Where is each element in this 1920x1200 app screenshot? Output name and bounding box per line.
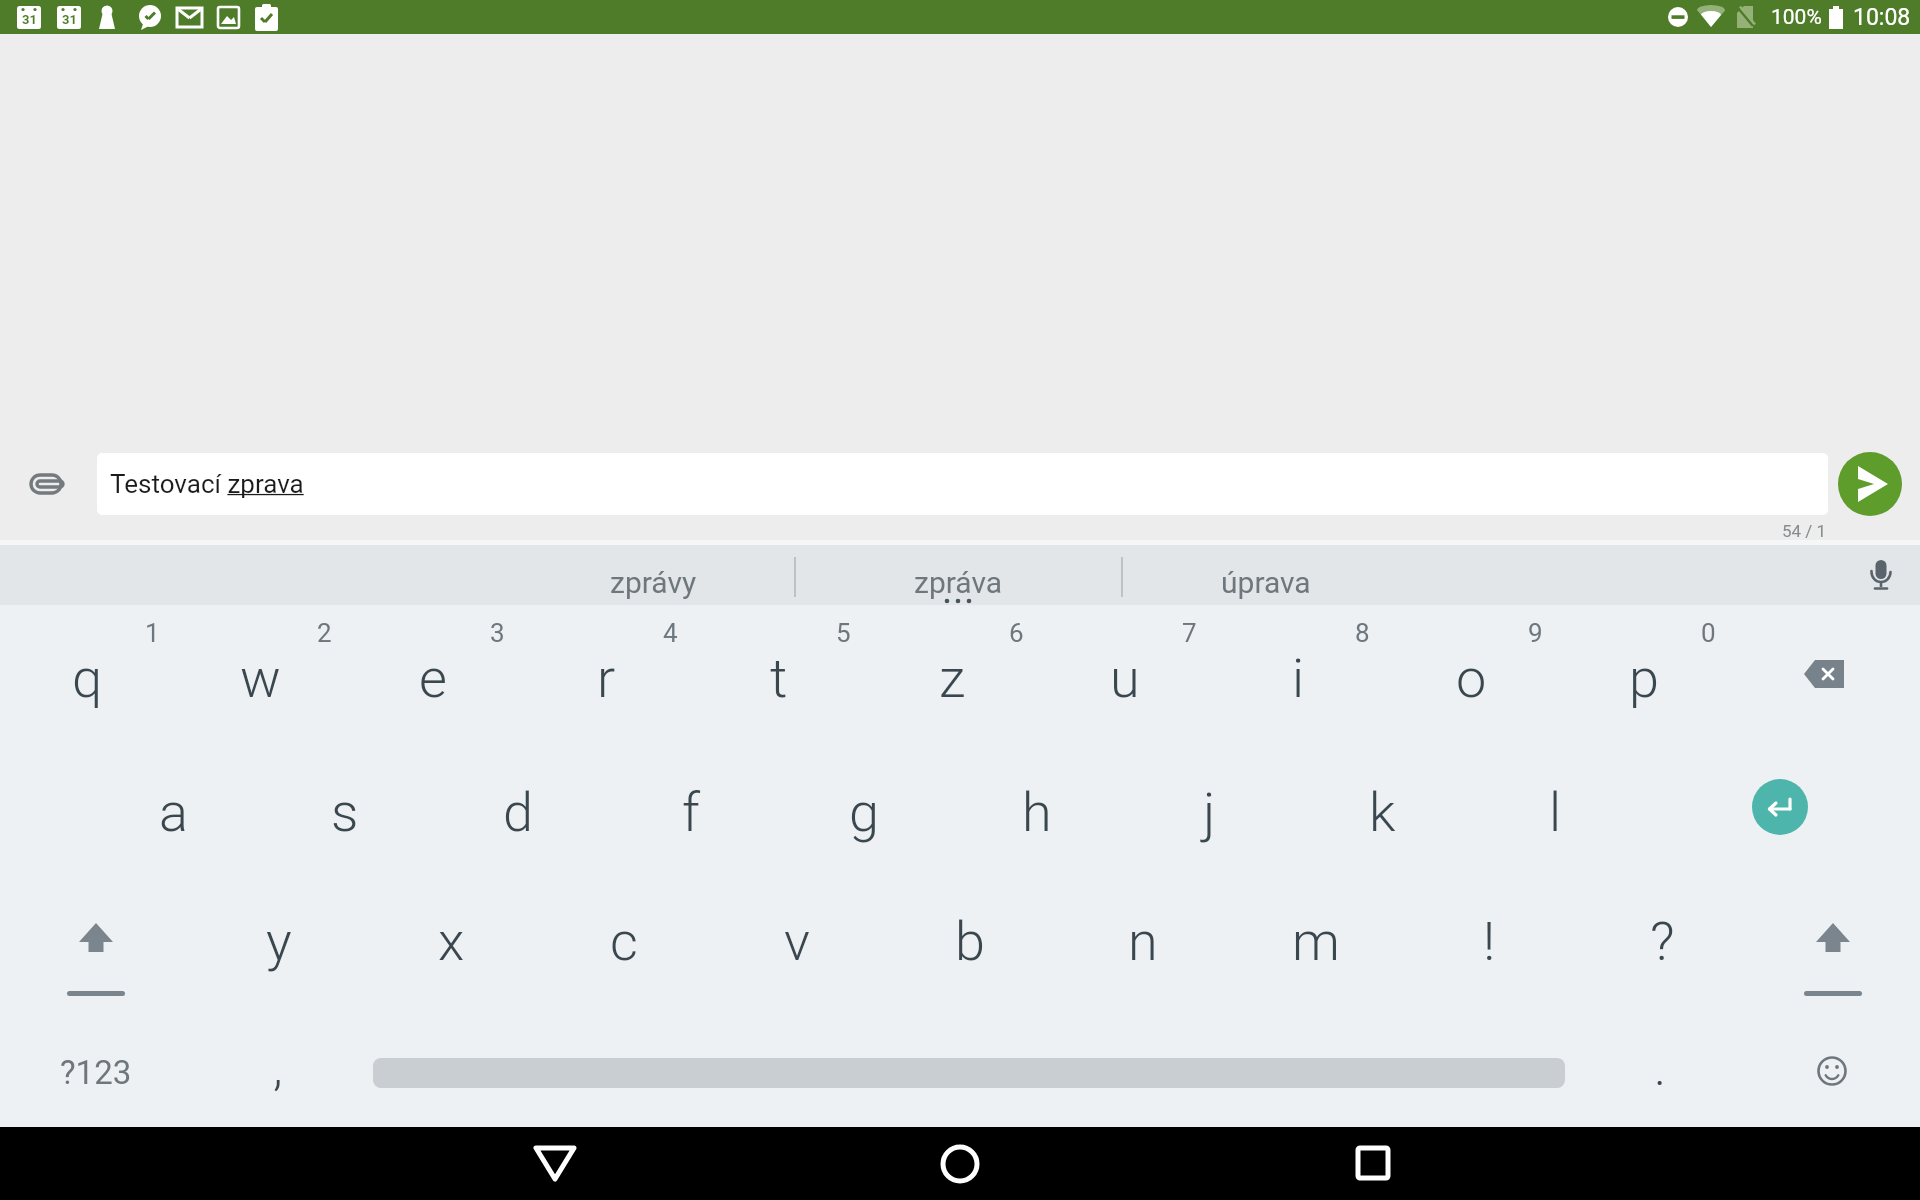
button[interactable] (1838, 452, 1902, 516)
staticText: ?123 (60, 1053, 132, 1092)
button[interactable]: t (704, 628, 854, 728)
staticText: z (939, 647, 966, 710)
button[interactable]: o (1396, 628, 1546, 728)
button[interactable] (28, 464, 68, 504)
staticText: . (1654, 1039, 1666, 1098)
button[interactable]: q (12, 628, 162, 728)
staticText: o (1456, 647, 1487, 710)
staticText: p (1629, 647, 1659, 710)
button[interactable]: s (270, 762, 420, 862)
button[interactable]: z (877, 628, 1027, 728)
staticText: t (770, 647, 788, 710)
staticText: Testovací zprava (110, 469, 304, 499)
staticText: 2 (317, 618, 332, 648)
staticText: úprava (1221, 565, 1311, 600)
button[interactable]: r (531, 628, 681, 728)
button[interactable]: m (1241, 891, 1391, 991)
staticText: , (273, 1039, 283, 1098)
staticText: r (597, 647, 616, 710)
button[interactable]: b (895, 891, 1045, 991)
button[interactable]: Testovací zprava (97, 453, 1828, 515)
staticText: x (438, 910, 465, 973)
button[interactable]: . (1600, 1023, 1720, 1113)
button[interactable]: ? (1587, 891, 1737, 991)
button[interactable] (495, 1127, 615, 1199)
button[interactable] (1782, 1021, 1882, 1121)
staticText: y (266, 910, 292, 973)
button[interactable]: n (1068, 891, 1218, 991)
staticText: i (1292, 647, 1305, 710)
button[interactable] (1749, 624, 1899, 724)
button[interactable]: a (98, 762, 248, 862)
staticText: 3 (490, 618, 505, 648)
button[interactable] (1752, 779, 1808, 835)
button[interactable]: c (549, 891, 699, 991)
staticText: 31 (22, 12, 37, 27)
staticText: e (419, 647, 447, 710)
button[interactable]: k (1307, 762, 1457, 862)
button[interactable]: d (443, 762, 593, 862)
staticText: m (1292, 910, 1340, 973)
staticText: c (610, 910, 638, 973)
staticText: zpráva (914, 565, 1003, 600)
staticText: 10:08 (1853, 4, 1911, 31)
button[interactable]: j (1134, 762, 1284, 862)
button[interactable]: , (218, 1023, 338, 1113)
staticText: v (784, 910, 810, 973)
staticText: d (503, 781, 534, 844)
staticText: n (1128, 910, 1158, 973)
staticText: 7 (1182, 618, 1197, 648)
button[interactable]: h (962, 762, 1112, 862)
button[interactable]: f (616, 762, 766, 862)
button[interactable]: v (722, 891, 872, 991)
staticText: 4 (663, 618, 678, 648)
button[interactable] (1861, 558, 1901, 598)
staticText: 100% (1771, 5, 1822, 30)
staticText: j (1203, 781, 1216, 844)
staticText: k (1369, 781, 1396, 844)
staticText: ? (1650, 910, 1675, 973)
button[interactable]: ! (1414, 891, 1564, 991)
staticText: 0 (1701, 618, 1716, 648)
button[interactable]: zprávy (543, 560, 763, 604)
button[interactable]: e (358, 628, 508, 728)
button[interactable]: g (789, 762, 939, 862)
button[interactable]: p (1569, 628, 1719, 728)
staticText: 5 (836, 618, 851, 648)
staticText: zprávy (610, 565, 697, 600)
staticText: q (72, 647, 103, 710)
staticText: 54 / 1 (1782, 521, 1827, 541)
staticText: f (682, 781, 700, 844)
staticText: 8 (1355, 618, 1370, 648)
button[interactable]: u (1050, 628, 1200, 728)
staticText: 1 (145, 618, 160, 648)
staticText: w (240, 647, 281, 710)
staticText: s (331, 781, 359, 844)
button[interactable]: úprava (1156, 560, 1376, 604)
button[interactable]: zpráva (848, 560, 1068, 604)
staticText: g (849, 781, 879, 844)
staticText: ! (1483, 910, 1496, 973)
staticText: l (1549, 781, 1562, 844)
button[interactable] (1758, 889, 1908, 999)
button[interactable]: ?123 (21, 1032, 171, 1112)
button[interactable]: w (185, 628, 335, 728)
staticText: b (955, 910, 985, 973)
staticText: u (1110, 647, 1140, 710)
staticText: 9 (1528, 618, 1543, 648)
staticText: 6 (1009, 618, 1024, 648)
button[interactable]: x (376, 891, 526, 991)
button[interactable]: i (1223, 628, 1373, 728)
button[interactable]: y (204, 891, 354, 991)
button[interactable] (21, 889, 171, 999)
staticText: 31 (62, 12, 77, 27)
staticText: h (1022, 781, 1052, 844)
button[interactable] (900, 1128, 1020, 1200)
button[interactable]: l (1480, 762, 1630, 862)
button[interactable] (1313, 1127, 1433, 1199)
staticText: a (159, 781, 188, 844)
